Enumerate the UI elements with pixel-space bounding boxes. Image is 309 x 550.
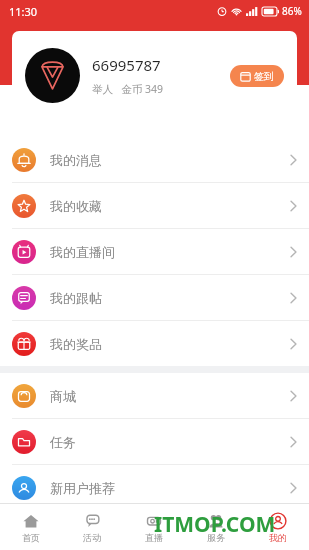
- staticText: 服务: [207, 532, 225, 543]
- staticText: 任务: [50, 434, 76, 450]
- button[interactable]: 活动: [61, 504, 123, 550]
- button[interactable]: 服务: [185, 504, 247, 550]
- button[interactable]: 我的消息: [0, 137, 309, 182]
- staticText: 首页: [22, 532, 40, 543]
- button[interactable]: 我的: [247, 504, 309, 550]
- staticText: 签到: [254, 70, 274, 83]
- button[interactable]: 签到: [230, 65, 284, 87]
- button[interactable]: 新用户推荐: [0, 465, 309, 510]
- button[interactable]: 66995787: [12, 31, 297, 120]
- staticText: 我的跟帖: [50, 290, 102, 306]
- staticText: 我的奖品: [50, 336, 102, 352]
- button[interactable]: 商城: [0, 373, 309, 418]
- button[interactable]: 任务: [0, 419, 309, 464]
- button[interactable]: 我的收藏: [0, 183, 309, 228]
- button[interactable]: 直播: [123, 504, 185, 550]
- staticText: 直播: [145, 532, 163, 543]
- staticText: 我的: [269, 532, 287, 543]
- staticText: 活动: [83, 532, 101, 543]
- button[interactable]: 我的直播间: [0, 229, 309, 274]
- staticText: 11:30: [9, 4, 38, 19]
- staticText: 商城: [50, 388, 76, 404]
- staticText: 86%: [282, 4, 302, 18]
- staticText: 66995787: [92, 55, 161, 75]
- staticText: 我的消息: [50, 152, 102, 168]
- staticText: 我的直播间: [50, 244, 115, 260]
- staticText: 举人 金币 349: [92, 82, 163, 96]
- staticText: 新用户推荐: [50, 480, 115, 496]
- button[interactable]: 首页: [0, 504, 61, 550]
- button[interactable]: 我的奖品: [0, 321, 309, 366]
- staticText: 我的收藏: [50, 198, 102, 214]
- button[interactable]: 我的跟帖: [0, 275, 309, 320]
- staticText: ITMOP.COM: [154, 510, 276, 539]
